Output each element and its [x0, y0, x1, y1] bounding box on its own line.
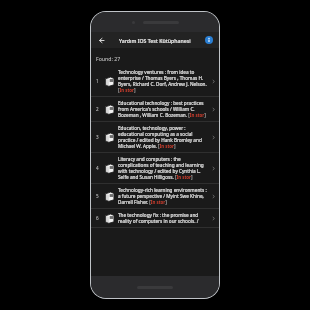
staticText: Technology ventures : from idea to enter…: [118, 69, 208, 93]
button[interactable]: 2: [91, 97, 219, 121]
button[interactable]: 1: [91, 66, 219, 96]
staticText: The technology fix : the promise and rea…: [118, 212, 208, 224]
staticText: 1: [96, 78, 99, 84]
staticText: 6: [96, 215, 99, 221]
staticText: Literacy and computers : the complicatio…: [118, 156, 208, 180]
button[interactable]: Back: [95, 34, 107, 46]
staticText: Technology-rich learning environments : …: [118, 187, 208, 205]
staticText: Yardım IOS Test Kütüphanesi: [119, 37, 191, 44]
staticText: Educational technology : best practices …: [118, 100, 208, 118]
staticText: 3: [96, 134, 99, 140]
button[interactable]: 5: [91, 184, 219, 208]
button[interactable]: 3: [91, 122, 219, 152]
staticText: 2: [96, 106, 99, 112]
staticText: 4: [96, 165, 99, 171]
button[interactable]: 4: [91, 153, 219, 183]
button[interactable]: 6: [91, 209, 219, 227]
staticText: 5: [96, 193, 99, 199]
button[interactable]: Info: [203, 34, 215, 46]
staticText: Found: 27: [96, 55, 121, 62]
staticText: Education, technology, power : education…: [118, 125, 208, 149]
